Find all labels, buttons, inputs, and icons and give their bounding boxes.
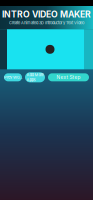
staticText: INTRO VIDEO MAKER — [2, 9, 91, 19]
staticText: Prev Work — [4, 75, 22, 80]
staticText: Create Animated 3D Introductory Text Vid… — [9, 20, 84, 25]
button[interactable]: Prev Work — [4, 73, 22, 81]
button[interactable]: Add More Apps — [25, 72, 45, 82]
button[interactable]: Next Step — [48, 73, 89, 81]
staticText: Add More Apps — [26, 72, 43, 82]
staticText: Next Step — [56, 74, 80, 80]
